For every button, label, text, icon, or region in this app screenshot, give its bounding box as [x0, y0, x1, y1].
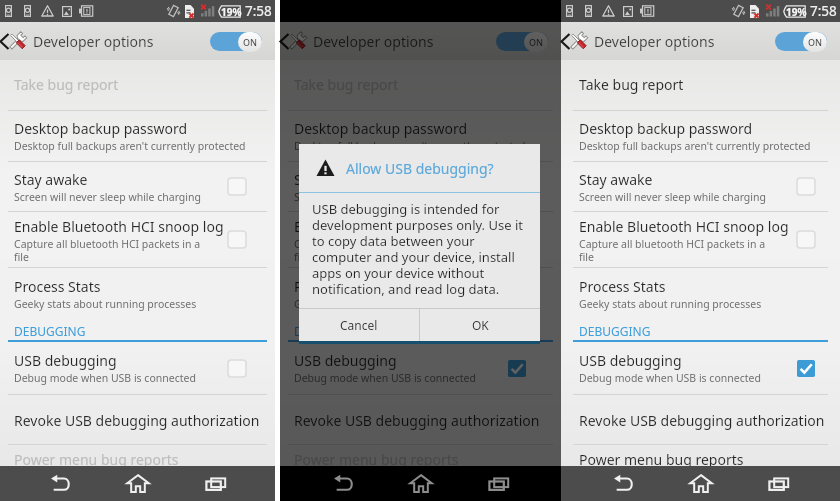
- staticText: Cancel: [340, 317, 378, 333]
- button[interactable]: Process Stats: [280, 268, 561, 320]
- staticText: Take bug report: [579, 75, 684, 94]
- button[interactable]: USB debugging: [0, 342, 275, 394]
- staticText: Stay awake: [14, 170, 88, 189]
- button[interactable]: Desktop backup password: [280, 111, 561, 161]
- button[interactable]: Desktop backup password: [0, 111, 275, 161]
- button[interactable]: Navigate up: [280, 31, 308, 51]
- staticText: Desktop backup password: [14, 119, 188, 138]
- staticText: Geeky stats about running processes: [14, 297, 197, 311]
- staticText: Geeky stats about running processes: [294, 297, 477, 311]
- button[interactable]: USB debugging: [561, 342, 840, 394]
- staticText: Revoke USB debugging authorization: [579, 411, 825, 430]
- button[interactable]: USB debugging: [280, 342, 561, 394]
- button[interactable]: Navigate up: [561, 31, 589, 51]
- button[interactable]: Revoke USB debugging authorization: [280, 395, 561, 444]
- staticText: Desktop backup password: [579, 119, 753, 138]
- staticText: OK: [472, 317, 489, 333]
- button[interactable]: Unchecked: [797, 231, 815, 248]
- staticText: Debug mode when USB is connected: [294, 371, 476, 385]
- staticText: Stay awake: [579, 170, 653, 189]
- button[interactable]: Back: [304, 466, 382, 501]
- button[interactable]: Home: [99, 466, 177, 501]
- staticText: Revoke USB debugging authorization: [294, 411, 540, 430]
- button[interactable]: Navigate up: [0, 31, 28, 51]
- button[interactable]: Desktop backup password: [561, 111, 840, 161]
- staticText: Stay awake: [294, 170, 368, 189]
- button[interactable]: Back: [21, 466, 99, 501]
- staticText: ON: [808, 36, 823, 48]
- staticText: DEBUGGING: [14, 323, 86, 339]
- staticText: Desktop full backups aren't currently pr…: [579, 139, 811, 153]
- button[interactable]: Developer options on: [775, 31, 827, 52]
- button[interactable]: Developer options on: [496, 31, 548, 52]
- button[interactable]: Unchecked: [228, 178, 246, 195]
- button[interactable]: OK: [420, 309, 540, 341]
- button[interactable]: Checked: [508, 360, 526, 377]
- staticText: Process Stats: [294, 277, 381, 296]
- button[interactable]: Stay awake: [561, 162, 840, 211]
- button[interactable]: Revoke USB debugging authorization: [0, 395, 275, 444]
- staticText: Desktop backup password: [294, 119, 468, 138]
- button[interactable]: Back: [584, 466, 662, 501]
- button[interactable]: Enable Bluetooth HCI snoop log: [0, 212, 275, 267]
- button[interactable]: Unchecked: [228, 360, 246, 377]
- button[interactable]: Process Stats: [0, 268, 275, 320]
- button[interactable]: Take bug report: [0, 60, 275, 110]
- button[interactable]: Enable Bluetooth HCI snoop log: [280, 212, 561, 267]
- staticText: USB debugging: [579, 351, 682, 370]
- staticText: Debug mode when USB is connected: [579, 371, 761, 385]
- button[interactable]: Home: [382, 466, 460, 501]
- staticText: Revoke USB debugging authorization: [14, 411, 260, 430]
- staticText: Power menu bug reports: [579, 450, 744, 466]
- staticText: ON: [243, 36, 258, 48]
- button[interactable]: Home: [662, 466, 740, 501]
- button[interactable]: Unchecked: [797, 178, 815, 195]
- staticText: Process Stats: [14, 277, 101, 296]
- staticText: Debug mode when USB is connected: [14, 371, 196, 385]
- button[interactable]: Stay awake: [0, 162, 275, 211]
- staticText: Capture all bluetooth HCI packets in a f…: [294, 237, 481, 264]
- staticText: Capture all bluetooth HCI packets in a f…: [579, 237, 766, 264]
- staticText: DEBUGGING: [579, 323, 651, 339]
- staticText: 19%: [786, 5, 807, 18]
- staticText: Developer options: [313, 32, 434, 51]
- button[interactable]: Revoke USB debugging authorization: [561, 395, 840, 444]
- staticText: Take bug report: [294, 75, 399, 94]
- button[interactable]: Take bug report: [561, 60, 840, 110]
- button[interactable]: Recent apps: [740, 466, 818, 501]
- staticText: Enable Bluetooth HCI snoop log: [579, 217, 789, 236]
- staticText: 19%: [221, 5, 242, 18]
- button[interactable]: Power menu bug reports: [280, 445, 561, 466]
- staticText: 7:58: [810, 2, 837, 20]
- staticText: Capture all bluetooth HCI packets in a f…: [14, 237, 201, 264]
- staticText: Screen will never sleep while charging: [294, 190, 481, 204]
- button[interactable]: Stay awake: [280, 162, 561, 211]
- button[interactable]: Developer options on: [210, 31, 262, 52]
- button[interactable]: Enable Bluetooth HCI snoop log: [561, 212, 840, 267]
- button[interactable]: Unchecked: [508, 178, 526, 195]
- staticText: Developer options: [594, 32, 715, 51]
- staticText: Power menu bug reports: [14, 450, 179, 466]
- button[interactable]: Recent apps: [460, 466, 538, 501]
- staticText: Allow USB debugging?: [346, 159, 494, 178]
- button[interactable]: Unchecked: [228, 231, 246, 248]
- staticText: Power menu bug reports: [294, 450, 459, 466]
- button[interactable]: Power menu bug reports: [0, 445, 275, 466]
- button[interactable]: Checked: [797, 360, 815, 377]
- staticText: Enable Bluetooth HCI snoop log: [14, 217, 224, 236]
- staticText: Enable Bluetooth HCI snoop log: [294, 217, 504, 236]
- staticText: USB debugging: [14, 351, 117, 370]
- button[interactable]: Cancel: [299, 309, 419, 341]
- staticText: USB debugging is intended for developmen…: [312, 200, 531, 298]
- button[interactable]: Power menu bug reports: [561, 445, 840, 466]
- staticText: Developer options: [33, 32, 154, 51]
- staticText: Geeky stats about running processes: [579, 297, 762, 311]
- button[interactable]: Recent apps: [177, 466, 255, 501]
- button[interactable]: Process Stats: [561, 268, 840, 320]
- staticText: Screen will never sleep while charging: [579, 190, 766, 204]
- staticText: DEBUGGING: [294, 323, 366, 339]
